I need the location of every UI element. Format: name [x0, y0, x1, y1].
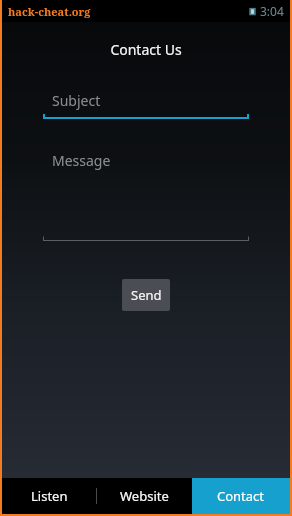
- button[interactable]: Website: [97, 478, 192, 514]
- button[interactable]: Listen: [2, 478, 96, 514]
- staticText: hack-cheat.org: [8, 4, 91, 19]
- button[interactable]: Subject: [43, 89, 249, 119]
- staticText: Listen: [31, 487, 68, 505]
- staticText: Send: [131, 286, 162, 304]
- staticText: Contact Us: [2, 40, 290, 59]
- button[interactable]: Message: [43, 149, 249, 241]
- staticText: Website: [120, 487, 169, 505]
- button[interactable]: Contact: [192, 478, 290, 514]
- staticText: Subject: [52, 91, 101, 110]
- button[interactable]: Send: [122, 279, 170, 311]
- staticText: Contact: [217, 487, 265, 505]
- staticText: Message: [52, 151, 111, 170]
- staticText: 3:04: [260, 3, 284, 19]
